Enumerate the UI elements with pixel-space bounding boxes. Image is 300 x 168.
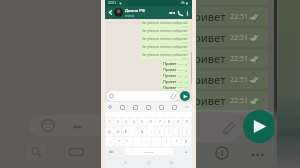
button[interactable]: Привет [163,61,188,66]
button[interactable]: Info [215,146,229,160]
button[interactable]: 1 [106,118,113,126]
button[interactable]: = [106,137,114,146]
button[interactable]: ривет [196,28,268,47]
button[interactable]: Back [107,9,114,16]
button[interactable]: Русский [125,148,173,155]
button[interactable]: ? [172,137,181,146]
button[interactable]: Attach [219,118,236,135]
staticText: 22:49 [182,25,188,27]
button[interactable]: 5 [138,118,146,126]
button[interactable]: Send [180,91,190,101]
button[interactable]: Back [123,160,128,165]
button[interactable]: : [142,137,151,146]
staticText: = [109,140,111,144]
button[interactable]: ; [152,137,161,146]
button[interactable]: 2 [114,118,121,126]
button[interactable]: More [185,105,189,109]
button[interactable]: abc [106,147,117,156]
button[interactable]: , [117,147,124,156]
button[interactable]: More [250,147,266,163]
button[interactable]: Tool 2 [133,105,138,110]
button[interactable]: ривет [196,70,268,89]
staticText: ривет [196,51,226,66]
staticText: 22:51 [178,63,184,66]
button[interactable]: Привет [163,67,188,72]
staticText: 8 [168,120,170,124]
button[interactable]: ₽ [122,127,129,136]
button[interactable]: Tool 4 [159,105,164,110]
button[interactable]: 7 [156,118,164,126]
button[interactable]: Home [146,160,151,165]
staticText: Диана РФ [125,8,146,14]
button[interactable]: Tool 3 [146,105,151,110]
button[interactable]: Send [243,110,276,143]
button[interactable]: Call [176,9,184,17]
button[interactable]: ( [165,127,173,136]
button[interactable]: Message input [28,115,106,136]
button[interactable]: 6 [147,118,155,126]
button[interactable]: Tool 5 [172,105,177,110]
button[interactable]: # [114,127,121,136]
staticText: 22:49 [182,49,188,51]
button[interactable]: ривет [196,7,268,26]
staticText: ривет [196,93,226,108]
button[interactable]: @ [106,127,113,136]
button[interactable] [107,91,179,101]
button[interactable]: Вы удалили данное сообщение [142,53,188,59]
button[interactable]: * [115,137,123,146]
button[interactable]: 3 [122,118,129,126]
staticText: / [186,130,188,134]
button[interactable]: Tool 1 [120,105,125,110]
button[interactable]: 4 [130,118,137,126]
button[interactable]: Привет [163,79,188,84]
button[interactable]: ' [133,137,141,146]
staticText: ↵ [185,150,188,154]
staticText: & [141,130,144,134]
button[interactable]: % [182,137,191,146]
staticText: 22:51 [230,96,248,106]
staticText: * [118,140,120,144]
staticText: Привет [163,79,177,84]
button[interactable]: Вы удалили данное сообщение [142,29,188,35]
button[interactable]: Video call [167,8,176,17]
staticText: ) [178,130,179,134]
button[interactable]: + [156,127,164,136]
staticText: ? [176,140,178,144]
button[interactable]: Вы удалили данное сообщение [142,21,188,27]
staticText: abc [109,150,114,154]
staticText: " [127,140,129,144]
button[interactable]: 8 [165,118,173,126]
button[interactable]: " [124,137,132,146]
staticText: Русский [144,150,154,153]
button[interactable]: & [138,127,146,136]
button[interactable]: Recents [169,160,174,165]
button[interactable]: Привет [163,85,188,89]
button[interactable]: Message input [196,112,242,142]
staticText: ( [169,130,170,134]
button[interactable]: _ [130,127,137,136]
button[interactable]: Вы удалили данное сообщение [142,37,188,43]
button[interactable]: Вы удалили данное сообщение [142,45,188,51]
button[interactable]: More options [184,10,190,16]
button[interactable]: ! [162,137,171,146]
button[interactable]: / [183,127,191,136]
button[interactable]: 9 [174,118,182,126]
staticText: + [159,130,161,134]
staticText: Вы удалили данное сообщение [142,53,188,57]
button[interactable]: ривет [196,91,268,110]
staticText: 22:51 [178,69,184,72]
staticText: @ [108,130,111,134]
staticText: . [177,150,178,154]
button[interactable]: - [147,127,155,136]
staticText: % [185,140,188,144]
staticText: Привет [163,85,177,89]
button[interactable]: Привет [163,73,188,78]
button[interactable]: Enter [181,147,191,156]
button[interactable]: ривет [196,49,268,68]
button[interactable]: 0 [183,118,191,126]
staticText: : [146,140,147,144]
button[interactable]: ) [174,127,182,136]
button[interactable]: Settings [108,105,112,109]
